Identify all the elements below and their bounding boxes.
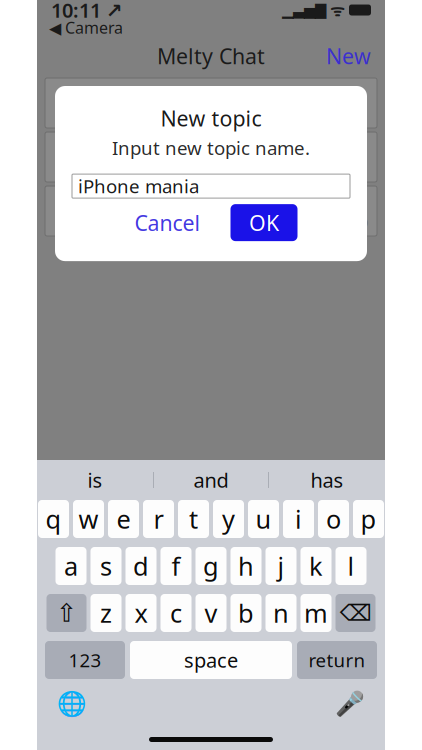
button[interactable]: return (297, 641, 377, 679)
button[interactable]: Shift (46, 594, 86, 632)
button[interactable]: a (55, 547, 86, 585)
button[interactable]: q (38, 500, 69, 538)
button[interactable]: space (130, 641, 292, 679)
staticText: New topic (160, 104, 261, 132)
staticText: is (87, 467, 102, 493)
button[interactable]: o (318, 500, 349, 538)
staticText: New (326, 42, 371, 70)
button[interactable]: 123 (45, 641, 125, 679)
staticText: r (153, 502, 163, 536)
staticText: q (45, 502, 61, 536)
button[interactable]: f (160, 547, 191, 585)
staticText: c (170, 596, 182, 630)
staticText: ⌫ (339, 600, 371, 626)
staticText: k (309, 549, 323, 583)
button[interactable]: t (178, 500, 209, 538)
button[interactable]: OK (230, 204, 297, 241)
button[interactable]: e (108, 500, 139, 538)
button[interactable]: r (143, 500, 174, 538)
button[interactable]: k (300, 547, 331, 585)
staticText: p (360, 502, 376, 536)
staticText: 10:11 ↗ (51, 0, 123, 23)
staticText: Melty Chat (157, 42, 265, 70)
staticText: e (116, 502, 130, 536)
staticText: t (189, 502, 198, 536)
button[interactable]: m (300, 594, 331, 632)
button[interactable]: u (248, 500, 279, 538)
staticText: 🎤 (335, 690, 365, 718)
staticText: m (304, 596, 328, 630)
button[interactable]: y (213, 500, 244, 538)
button[interactable]: p (353, 500, 384, 538)
staticText: 123 (68, 648, 101, 672)
staticText: h (238, 549, 254, 583)
staticText: return (308, 648, 365, 672)
button[interactable]: Switch keyboard (52, 687, 92, 721)
staticText: Cancel (134, 208, 200, 237)
staticText: v (204, 596, 217, 630)
staticText: Input new topic name. (112, 135, 310, 160)
button[interactable]: has (269, 461, 385, 499)
staticText: w (78, 502, 98, 536)
button[interactable]: d (125, 547, 156, 585)
button[interactable]: l (335, 547, 366, 585)
button[interactable]: Cancel (124, 205, 210, 241)
button[interactable]: g (195, 547, 226, 585)
staticText: ᯤ (326, 0, 349, 21)
button[interactable]: n (265, 594, 296, 632)
button[interactable]: z (90, 594, 121, 632)
staticText: 🌐 (57, 690, 87, 718)
staticText: n (273, 596, 289, 630)
button[interactable]: w (73, 500, 104, 538)
button[interactable]: v (195, 594, 226, 632)
staticText: ▁▃▅▇ (282, 2, 326, 18)
staticText: x (134, 596, 147, 630)
staticText: and (193, 467, 228, 493)
staticText: iPhone mania (78, 174, 199, 198)
button[interactable]: b (230, 594, 261, 632)
staticText: ◀ Camera (49, 17, 123, 38)
button[interactable]: ◀ Camera (37, 20, 135, 35)
staticText: has (310, 467, 343, 493)
staticText: d (133, 549, 149, 583)
staticText: s (100, 549, 112, 583)
staticText: ⇧ (56, 599, 77, 627)
staticText: o (326, 502, 341, 536)
staticText: a (64, 549, 78, 583)
button[interactable]: i (283, 500, 314, 538)
staticText: j (277, 549, 284, 583)
staticText: space (184, 647, 238, 673)
button[interactable]: x (125, 594, 156, 632)
button[interactable]: Delete (335, 594, 375, 632)
button[interactable]: Dictation (330, 687, 370, 721)
staticText: OK (249, 208, 279, 237)
staticText: u (255, 502, 271, 536)
button[interactable]: c (160, 594, 191, 632)
button[interactable]: is (37, 461, 153, 499)
button[interactable]: s (90, 547, 121, 585)
staticText: l (347, 549, 354, 583)
staticText: g (203, 549, 219, 583)
staticText: y (222, 502, 235, 536)
staticText: 7 minutes ago (261, 211, 369, 232)
staticText: i (295, 502, 302, 536)
staticText: b (238, 596, 254, 630)
button[interactable]: New (312, 41, 385, 71)
staticText: f (171, 549, 180, 583)
button[interactable]: h (230, 547, 261, 585)
button[interactable]: j (265, 547, 296, 585)
staticText: z (100, 596, 112, 630)
button[interactable]: and (154, 461, 268, 499)
